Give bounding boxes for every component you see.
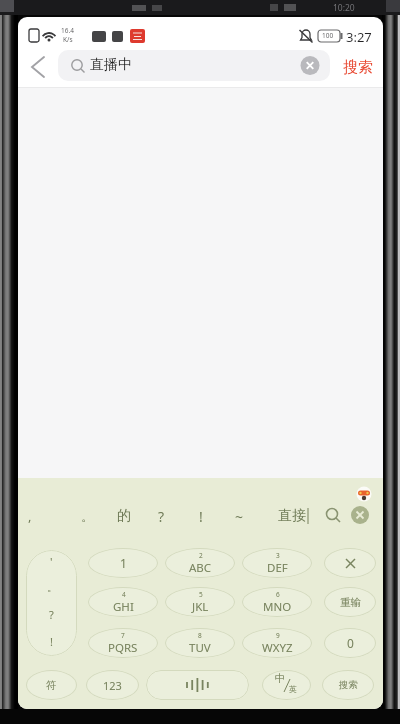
button[interactable]: 中	[262, 670, 311, 700]
button[interactable]: 8	[165, 628, 235, 658]
button[interactable]: 2	[165, 548, 235, 578]
staticText: ?	[49, 607, 54, 622]
staticText: 符	[46, 679, 57, 692]
button[interactable]: !	[199, 507, 203, 526]
button[interactable]: ~	[235, 507, 244, 526]
button[interactable]: 直播中	[58, 50, 330, 81]
staticText: '	[50, 554, 53, 569]
button[interactable]: 1	[88, 548, 158, 578]
button[interactable]: 6	[242, 587, 312, 617]
staticText: 3	[276, 551, 280, 560]
staticText: 0	[347, 635, 354, 651]
staticText: ABC	[189, 560, 212, 576]
button[interactable]	[22, 51, 54, 83]
staticText: 1	[120, 555, 127, 571]
staticText: PQRS	[108, 640, 138, 656]
staticText: 7	[121, 631, 125, 640]
staticText: 100	[322, 31, 334, 40]
staticText: 16.4	[61, 26, 74, 35]
button[interactable]: 的	[117, 507, 131, 525]
staticText: 直播中	[90, 56, 132, 74]
staticText: 123	[103, 678, 122, 693]
staticText: JKL	[192, 599, 209, 615]
button[interactable]: 4	[88, 587, 158, 617]
staticText: 10:20	[333, 2, 355, 14]
button[interactable]: 符	[26, 670, 77, 700]
staticText: 2	[199, 551, 203, 560]
button[interactable]	[324, 548, 376, 578]
staticText: 中	[275, 672, 286, 685]
staticText: 搜索	[343, 58, 373, 77]
staticText: WXYZ	[262, 640, 293, 656]
button[interactable]: 3	[242, 548, 312, 578]
staticText: K/s	[63, 35, 73, 44]
button[interactable]: 5	[165, 587, 235, 617]
button[interactable]: 7	[88, 628, 158, 658]
staticText: MNO	[263, 599, 292, 615]
staticText: 6	[276, 590, 280, 599]
button[interactable]: 9	[242, 628, 312, 658]
staticText: 英	[289, 684, 297, 694]
button[interactable]: 123	[86, 670, 139, 700]
staticText: 4	[122, 590, 126, 599]
button[interactable]: '	[26, 550, 77, 656]
staticText: 重输	[340, 596, 361, 609]
button[interactable]: 直接	[278, 507, 306, 525]
staticText: GHI	[113, 599, 134, 615]
staticText: 。	[47, 581, 57, 594]
button[interactable]: 搜索	[322, 670, 374, 700]
button[interactable]: 0	[324, 628, 376, 658]
staticText: 5	[199, 590, 203, 599]
staticText: 搜索	[339, 679, 358, 691]
button[interactable]: 重输	[324, 587, 376, 617]
button[interactable]: ,	[28, 507, 32, 525]
staticText: 8	[198, 631, 202, 640]
staticText: DEF	[267, 560, 288, 576]
button[interactable]: 搜索	[332, 47, 383, 87]
staticText: !	[50, 634, 53, 649]
staticText: 3:27	[346, 28, 372, 46]
staticText: TUV	[189, 640, 211, 656]
button[interactable]	[146, 670, 249, 700]
staticText: 9	[276, 631, 280, 640]
button[interactable]: 。	[81, 508, 94, 524]
button[interactable]: ?	[158, 507, 165, 526]
